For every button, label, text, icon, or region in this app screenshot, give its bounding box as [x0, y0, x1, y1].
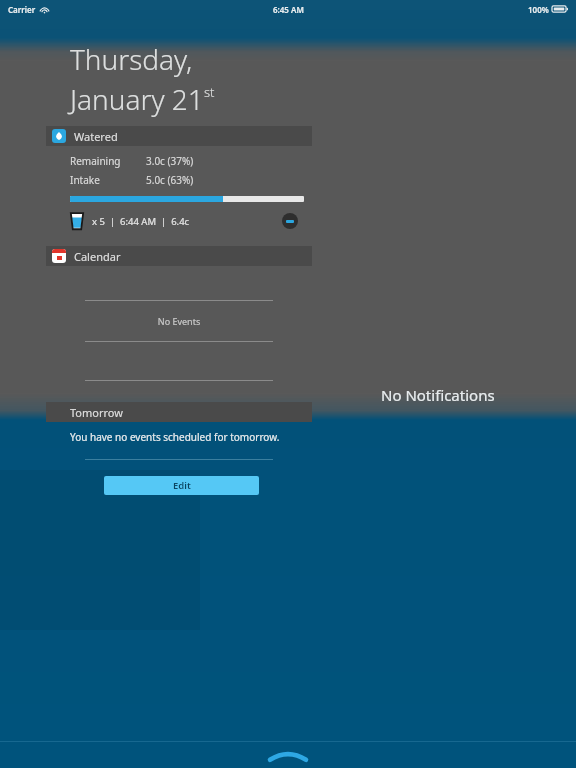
button[interactable]: Calendar: [46, 246, 312, 266]
staticText: January 21: [70, 80, 204, 118]
staticText: Watered: [74, 129, 118, 144]
staticText: 5.0c (63%): [146, 173, 194, 187]
button[interactable]: Watered: [46, 126, 312, 146]
staticText: 100%: [528, 4, 549, 15]
staticText: Calendar: [74, 249, 121, 264]
staticText: Edit: [173, 479, 191, 492]
button[interactable]: Edit: [104, 476, 259, 495]
staticText: st: [204, 83, 215, 101]
staticText: x 5 | 6:44 AM | 6.4c: [92, 215, 190, 228]
staticText: 3.0c (37%): [146, 154, 194, 168]
staticText: No Events: [85, 315, 273, 327]
staticText: Remaining: [70, 154, 121, 168]
staticText: 6:45 AM: [273, 4, 304, 15]
button[interactable]: Remove intake: [282, 213, 298, 229]
staticText: No Notifications: [381, 385, 495, 405]
staticText: You have no events scheduled for tomorro…: [70, 430, 280, 444]
staticText: Tomorrow: [70, 405, 123, 420]
staticText: Intake: [70, 173, 100, 187]
button[interactable]: Tomorrow: [46, 402, 312, 422]
staticText: Carrier: [8, 4, 36, 15]
staticText: Thursday,: [70, 40, 193, 78]
